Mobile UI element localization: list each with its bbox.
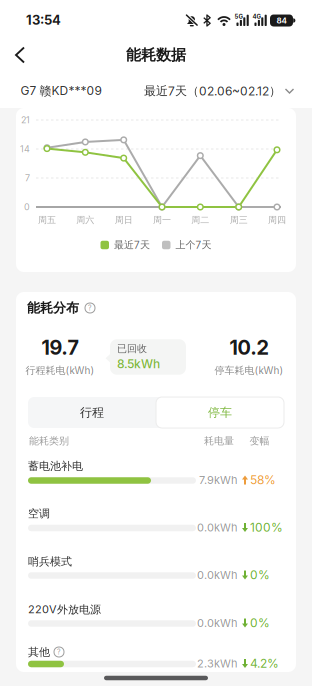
staticText: 行程耗电(kWh) [25, 364, 94, 376]
staticText: 2.3kWh [197, 657, 238, 670]
staticText: 已回收 [117, 342, 147, 355]
staticText: 停车 [208, 405, 232, 420]
staticText: 10.2 [229, 336, 268, 359]
staticText: 最近7天（02.06~02.12） [144, 84, 281, 98]
staticText: 能耗数据 [126, 46, 186, 64]
staticText: 哨兵模式 [28, 555, 72, 568]
staticText: 0% [250, 616, 270, 630]
button[interactable]: G7 赣KD***09 [20, 84, 101, 98]
staticText: 8.5kWh [117, 357, 160, 371]
staticText: 周六 [76, 214, 94, 226]
button[interactable]: 停车 [156, 397, 284, 428]
staticText: 4.2% [250, 656, 279, 671]
staticText: G7 赣KD***09 [20, 84, 101, 98]
staticText: 0.0kWh [197, 521, 238, 534]
staticText: 上个7天 [175, 239, 211, 251]
staticText: 19.7 [41, 336, 78, 359]
staticText: 空调 [28, 507, 50, 520]
staticText: 周四 [268, 214, 286, 226]
staticText: 0.0kWh [197, 568, 238, 581]
staticText: 能耗分布 [27, 300, 79, 316]
staticText: 0% [250, 568, 270, 582]
staticText: ? [57, 648, 61, 656]
staticText: 最近7天 [114, 239, 150, 251]
staticText: 变幅 [249, 435, 269, 447]
staticText: 其他 [28, 645, 50, 659]
staticText: 周一 [153, 214, 171, 226]
staticText: 14 [20, 144, 30, 154]
staticText: 5G [234, 13, 243, 20]
staticText: ? [88, 304, 92, 312]
button[interactable]: ? [54, 647, 64, 657]
staticText: 58% [250, 473, 276, 487]
staticText: 行程 [80, 405, 104, 420]
staticText: 13:54 [26, 12, 61, 28]
staticText: 0 [24, 202, 30, 212]
staticText: 周日 [115, 214, 133, 226]
button[interactable]: ? [85, 303, 95, 313]
staticText: 100% [250, 520, 283, 535]
staticText: 停车耗电(kWh) [214, 364, 283, 376]
staticText: 220V外放电源 [28, 603, 101, 616]
staticText: 4G [252, 13, 261, 20]
staticText: 0.0kWh [197, 616, 238, 629]
staticText: 7.9kWh [199, 473, 238, 486]
staticText: 84 [276, 16, 286, 25]
staticText: 周二 [191, 214, 209, 226]
staticText: 周五 [38, 214, 56, 226]
button[interactable] [4, 43, 40, 66]
staticText: 周三 [230, 214, 248, 226]
staticText: 蓄电池补电 [28, 459, 83, 473]
staticText: 耗电量 [204, 435, 234, 447]
button[interactable]: 最近7天（02.06~02.12） [144, 84, 294, 98]
staticText: 7 [25, 173, 30, 183]
staticText: 能耗类别 [29, 435, 69, 447]
button[interactable]: 行程 [28, 397, 156, 428]
staticText: 21 [21, 115, 30, 125]
